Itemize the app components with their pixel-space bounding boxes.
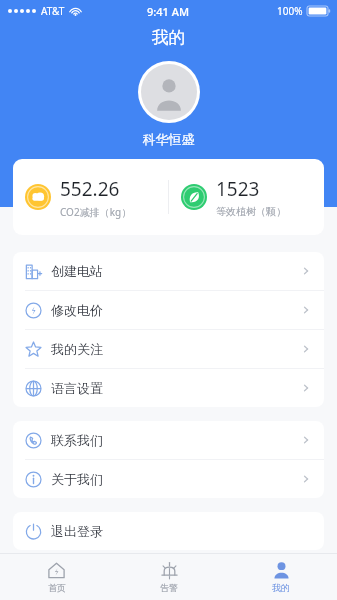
staticText: 首页	[48, 582, 66, 593]
staticText: 退出登录	[51, 523, 324, 539]
staticText: 修改电价	[51, 302, 300, 318]
button[interactable]: 关于我们	[13, 460, 324, 498]
staticText: 我的	[272, 582, 290, 593]
staticText: 我的	[0, 27, 337, 48]
button[interactable]: 联系我们	[13, 421, 324, 459]
staticText: 1523	[216, 176, 260, 202]
staticText: 等效植树（颗）	[216, 205, 286, 218]
button[interactable]: 我的关注	[13, 330, 324, 368]
staticText: 我的关注	[51, 341, 300, 357]
staticText: 联系我们	[51, 432, 300, 448]
button[interactable]: 首页	[0, 554, 113, 600]
staticText: 552.26	[60, 176, 120, 202]
staticText: AT&T	[41, 4, 65, 18]
staticText: 语言设置	[51, 380, 300, 396]
staticText: 关于我们	[51, 471, 300, 487]
staticText: 100%	[277, 4, 303, 18]
button[interactable]: 创建电站	[13, 252, 324, 290]
button[interactable]: 语言设置	[13, 369, 324, 407]
staticText: 告警	[160, 582, 178, 593]
button[interactable]: 修改电价	[13, 291, 324, 329]
staticText: 科华恒盛	[0, 131, 337, 147]
staticText: 9:41 AM	[147, 4, 190, 19]
staticText: CO2减排（kg）	[60, 205, 132, 219]
button[interactable]: 1523	[169, 159, 324, 235]
button[interactable]: 552.26	[13, 159, 168, 235]
button[interactable]: 我的	[225, 554, 337, 600]
button[interactable]: 告警	[113, 554, 225, 600]
button[interactable]: 退出登录	[13, 512, 324, 550]
staticText: 创建电站	[51, 263, 300, 279]
